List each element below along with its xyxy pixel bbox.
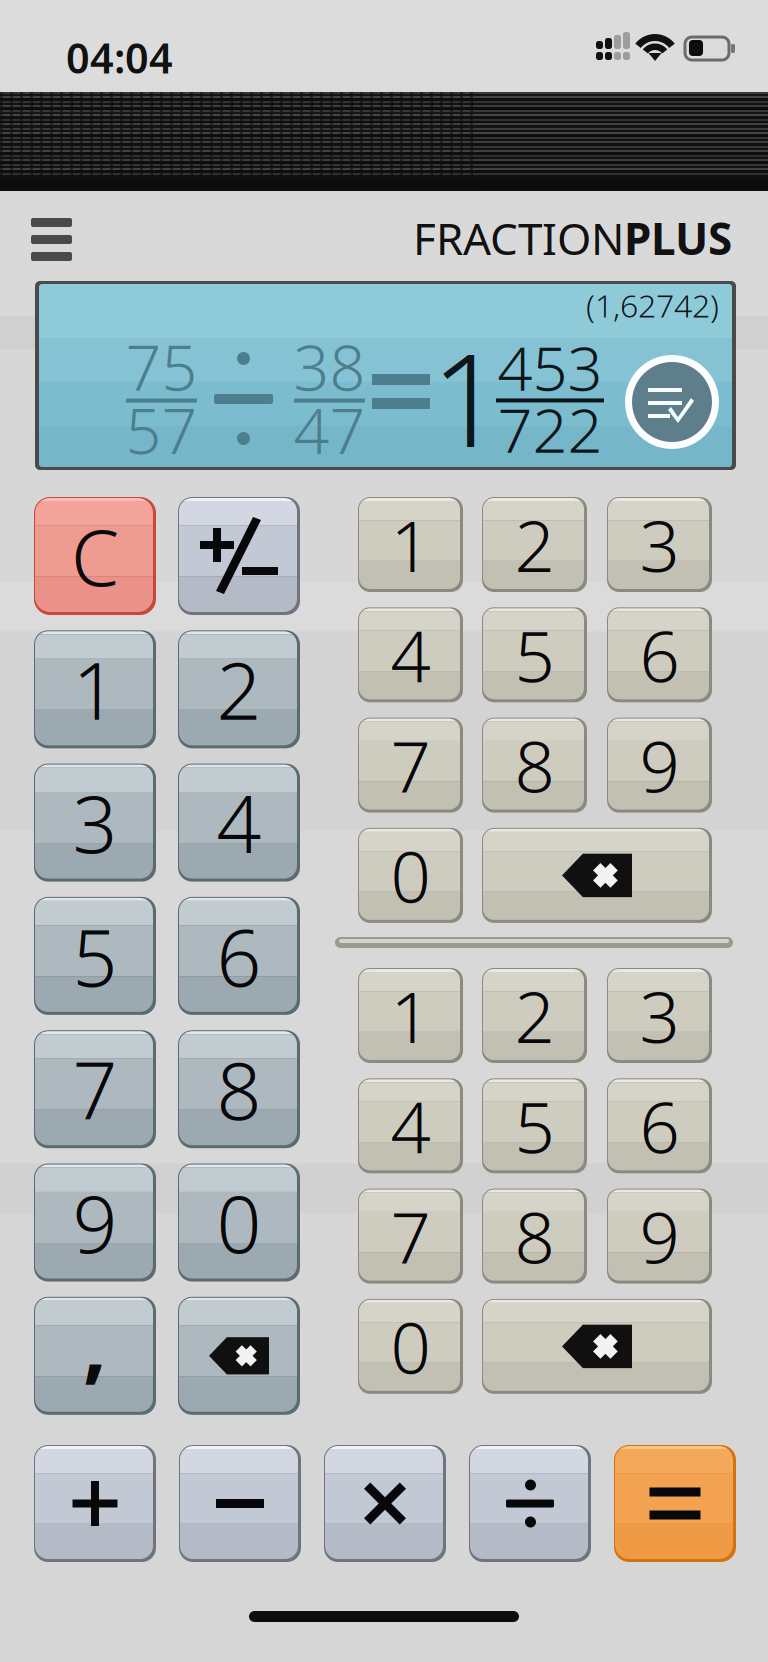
staticText: , (83, 1287, 107, 1397)
staticText: 0 (390, 1299, 430, 1393)
button[interactable]: 6 (178, 897, 300, 1015)
staticText: 6 (216, 904, 261, 1008)
staticText: 0 (216, 1170, 261, 1275)
button[interactable]: 3 (607, 497, 712, 592)
button[interactable] (469, 1445, 591, 1562)
staticText: 4 (390, 608, 430, 702)
button[interactable]: 8 (482, 1189, 587, 1284)
staticText: 9 (639, 1189, 679, 1283)
staticText: C (71, 505, 119, 607)
staticText: 0 (390, 828, 430, 922)
staticText: 722 (497, 388, 602, 470)
button[interactable] (179, 1445, 301, 1562)
button[interactable]: 4 (178, 764, 300, 882)
staticText: 3 (72, 770, 117, 875)
staticText: 6 (639, 1079, 679, 1173)
staticText: 8 (514, 718, 554, 812)
staticText: 3 (639, 969, 679, 1062)
button[interactable]: 3 (34, 764, 156, 882)
button[interactable] (482, 828, 712, 923)
staticText: 9 (72, 1170, 117, 1275)
staticText: 8 (514, 1189, 554, 1283)
button[interactable] (178, 1297, 300, 1415)
staticText: 4 (390, 1079, 430, 1173)
button[interactable]: 9 (34, 1163, 156, 1281)
button[interactable]: C (34, 497, 156, 615)
staticText: 2 (216, 637, 261, 742)
button[interactable]: 7 (34, 1030, 156, 1148)
button[interactable]: 0 (358, 828, 463, 923)
staticText: 1 (72, 637, 117, 742)
button[interactable]: 4 (358, 1078, 463, 1173)
staticText: 2 (514, 969, 554, 1062)
button[interactable]: 5 (482, 1078, 587, 1173)
staticText: 7 (390, 1189, 430, 1283)
staticText: FRACTION (413, 209, 624, 267)
staticText: 7 (72, 1037, 117, 1141)
button[interactable] (178, 497, 300, 615)
button[interactable]: 1 (34, 630, 156, 748)
button[interactable]: 2 (482, 968, 587, 1063)
button[interactable] (324, 1445, 446, 1562)
button[interactable]: 8 (482, 718, 587, 813)
staticText: 9 (639, 718, 679, 812)
staticText: PLUS (624, 209, 732, 267)
button[interactable]: 9 (607, 1189, 712, 1284)
staticText: 7 (390, 718, 430, 812)
button[interactable]: 9 (607, 718, 712, 813)
button[interactable] (34, 1445, 156, 1562)
staticText: 2 (514, 498, 554, 591)
button[interactable]: , (34, 1297, 156, 1415)
staticText: 1 (390, 969, 430, 1062)
button[interactable]: 8 (178, 1030, 300, 1148)
staticText: 75 (125, 325, 197, 408)
button[interactable]: 5 (482, 607, 587, 702)
button[interactable]: 6 (607, 607, 712, 702)
button[interactable]: 0 (358, 1299, 463, 1394)
button[interactable]: 7 (358, 718, 463, 813)
staticText: 5 (72, 904, 117, 1008)
staticText: 6 (639, 608, 679, 702)
staticText: 47 (293, 388, 365, 471)
button[interactable]: 1 (358, 968, 463, 1063)
staticText: 04:04 (66, 30, 173, 85)
button[interactable]: 7 (358, 1189, 463, 1284)
button[interactable]: 5 (34, 897, 156, 1015)
staticText: 1 (390, 498, 430, 591)
staticText: 5 (514, 1079, 554, 1173)
button[interactable]: 4 (358, 607, 463, 702)
button[interactable]: Menu (19, 206, 84, 273)
button[interactable]: 2 (482, 497, 587, 592)
staticText: 8 (216, 1037, 261, 1141)
staticText: 4 (216, 770, 261, 875)
button[interactable] (482, 1299, 712, 1394)
button[interactable]: 2 (178, 630, 300, 748)
button[interactable]: 3 (607, 968, 712, 1063)
button[interactable]: 1 (358, 497, 463, 592)
button[interactable]: 6 (607, 1078, 712, 1173)
button[interactable]: 0 (178, 1163, 300, 1281)
staticText: (1,62742) (586, 284, 719, 326)
staticText: 5 (514, 608, 554, 702)
staticText: 3 (639, 498, 679, 591)
button[interactable] (614, 1445, 736, 1562)
staticText: 1 (431, 312, 504, 482)
staticText: 453 (497, 326, 602, 408)
staticText: 38 (293, 325, 365, 408)
staticText: 57 (125, 388, 197, 471)
button[interactable]: Show steps (625, 355, 719, 449)
